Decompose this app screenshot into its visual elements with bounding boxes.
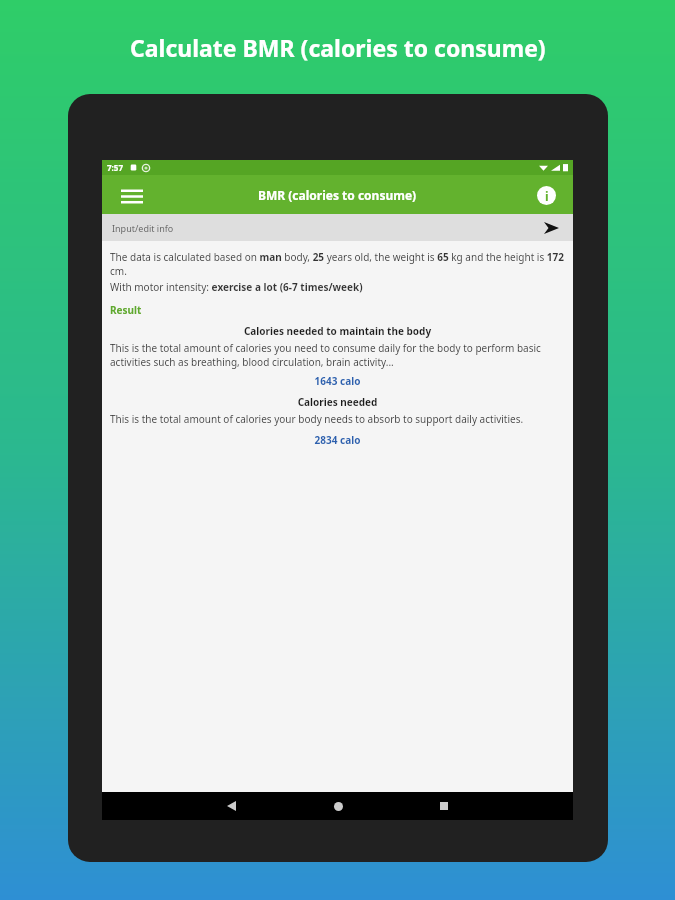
button[interactable]: Back [220, 795, 242, 817]
button[interactable]: Home [327, 795, 349, 817]
button[interactable]: Send [541, 218, 561, 238]
staticText: Calories needed to maintain the body [110, 324, 565, 338]
staticText: i [545, 188, 549, 204]
staticText: Calculate BMR (calories to consume) [130, 32, 546, 63]
button[interactable]: Open navigation menu [116, 179, 148, 211]
staticText: 1643 calo [110, 374, 565, 388]
staticText: This is the total amount of calories you… [110, 412, 565, 426]
button[interactable]: Recent apps [433, 795, 455, 817]
staticText: 2834 calo [110, 433, 565, 447]
staticText: 7:57 [107, 162, 123, 173]
button[interactable]: Information [531, 180, 561, 210]
staticText: BMR (calories to consume) [258, 187, 417, 203]
staticText: The data is calculated based on man body… [110, 250, 565, 278]
button[interactable]: Input/edit info [102, 214, 573, 241]
staticText: Result [110, 303, 142, 317]
staticText: Input/edit info [112, 222, 174, 234]
staticText: Calories needed [110, 395, 565, 409]
staticText: With motor intensity: exercise a lot (6-… [110, 280, 565, 294]
staticText: This is the total amount of calories you… [110, 341, 565, 369]
